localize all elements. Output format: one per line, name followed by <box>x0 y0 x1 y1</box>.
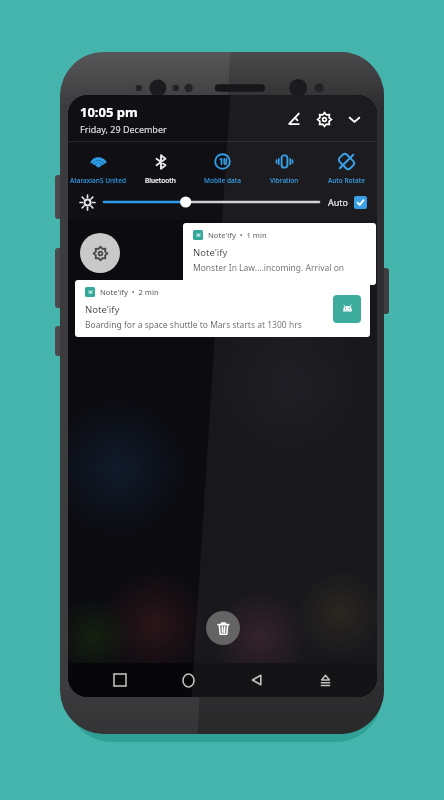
staticText: 10:05 pm <box>80 103 138 121</box>
staticText: Note'ify <box>85 303 120 316</box>
button[interactable]: AtaraxianS United <box>68 152 129 185</box>
button[interactable]: Home <box>171 663 205 697</box>
button[interactable]: Delete <box>206 611 240 645</box>
button[interactable]: Vibration <box>253 152 315 185</box>
staticText: Note'ify <box>193 246 228 259</box>
button[interactable]: Auto brightness <box>354 196 367 209</box>
staticText: Note'ify • 2 min <box>100 287 159 297</box>
button[interactable]: Recents <box>103 663 137 697</box>
button[interactable]: Collapse <box>341 106 367 132</box>
button[interactable]: Auto Rotate <box>315 152 377 185</box>
button[interactable]: Back <box>240 663 274 697</box>
staticText: Mobile data <box>204 176 241 185</box>
button[interactable]: Settings <box>311 106 337 132</box>
button[interactable]: Bluetooth <box>129 152 191 185</box>
staticText: AtaraxianS United <box>70 176 127 185</box>
staticText: Vibration <box>270 176 299 185</box>
staticText: Bluetooth <box>145 176 176 185</box>
button[interactable]: Quick settings <box>80 233 120 273</box>
staticText: Boarding for a space shuttle to Mars sta… <box>85 319 302 331</box>
staticText: Monster In Law....incoming. Arrival on a… <box>193 262 372 274</box>
staticText: Auto <box>328 196 349 208</box>
button[interactable]: Note'ify • 2 min <box>75 280 370 337</box>
staticText: Auto Rotate <box>328 176 365 185</box>
button[interactable]: Note'ify • 1 min <box>183 223 376 285</box>
button[interactable]: Keyboard <box>308 663 342 697</box>
button[interactable]: Edit <box>281 106 307 132</box>
button[interactable]: Mobile data <box>191 152 253 185</box>
button[interactable] <box>104 194 319 210</box>
staticText: Friday, 29 December <box>80 123 167 135</box>
staticText: Note'ify • 1 min <box>208 230 267 240</box>
